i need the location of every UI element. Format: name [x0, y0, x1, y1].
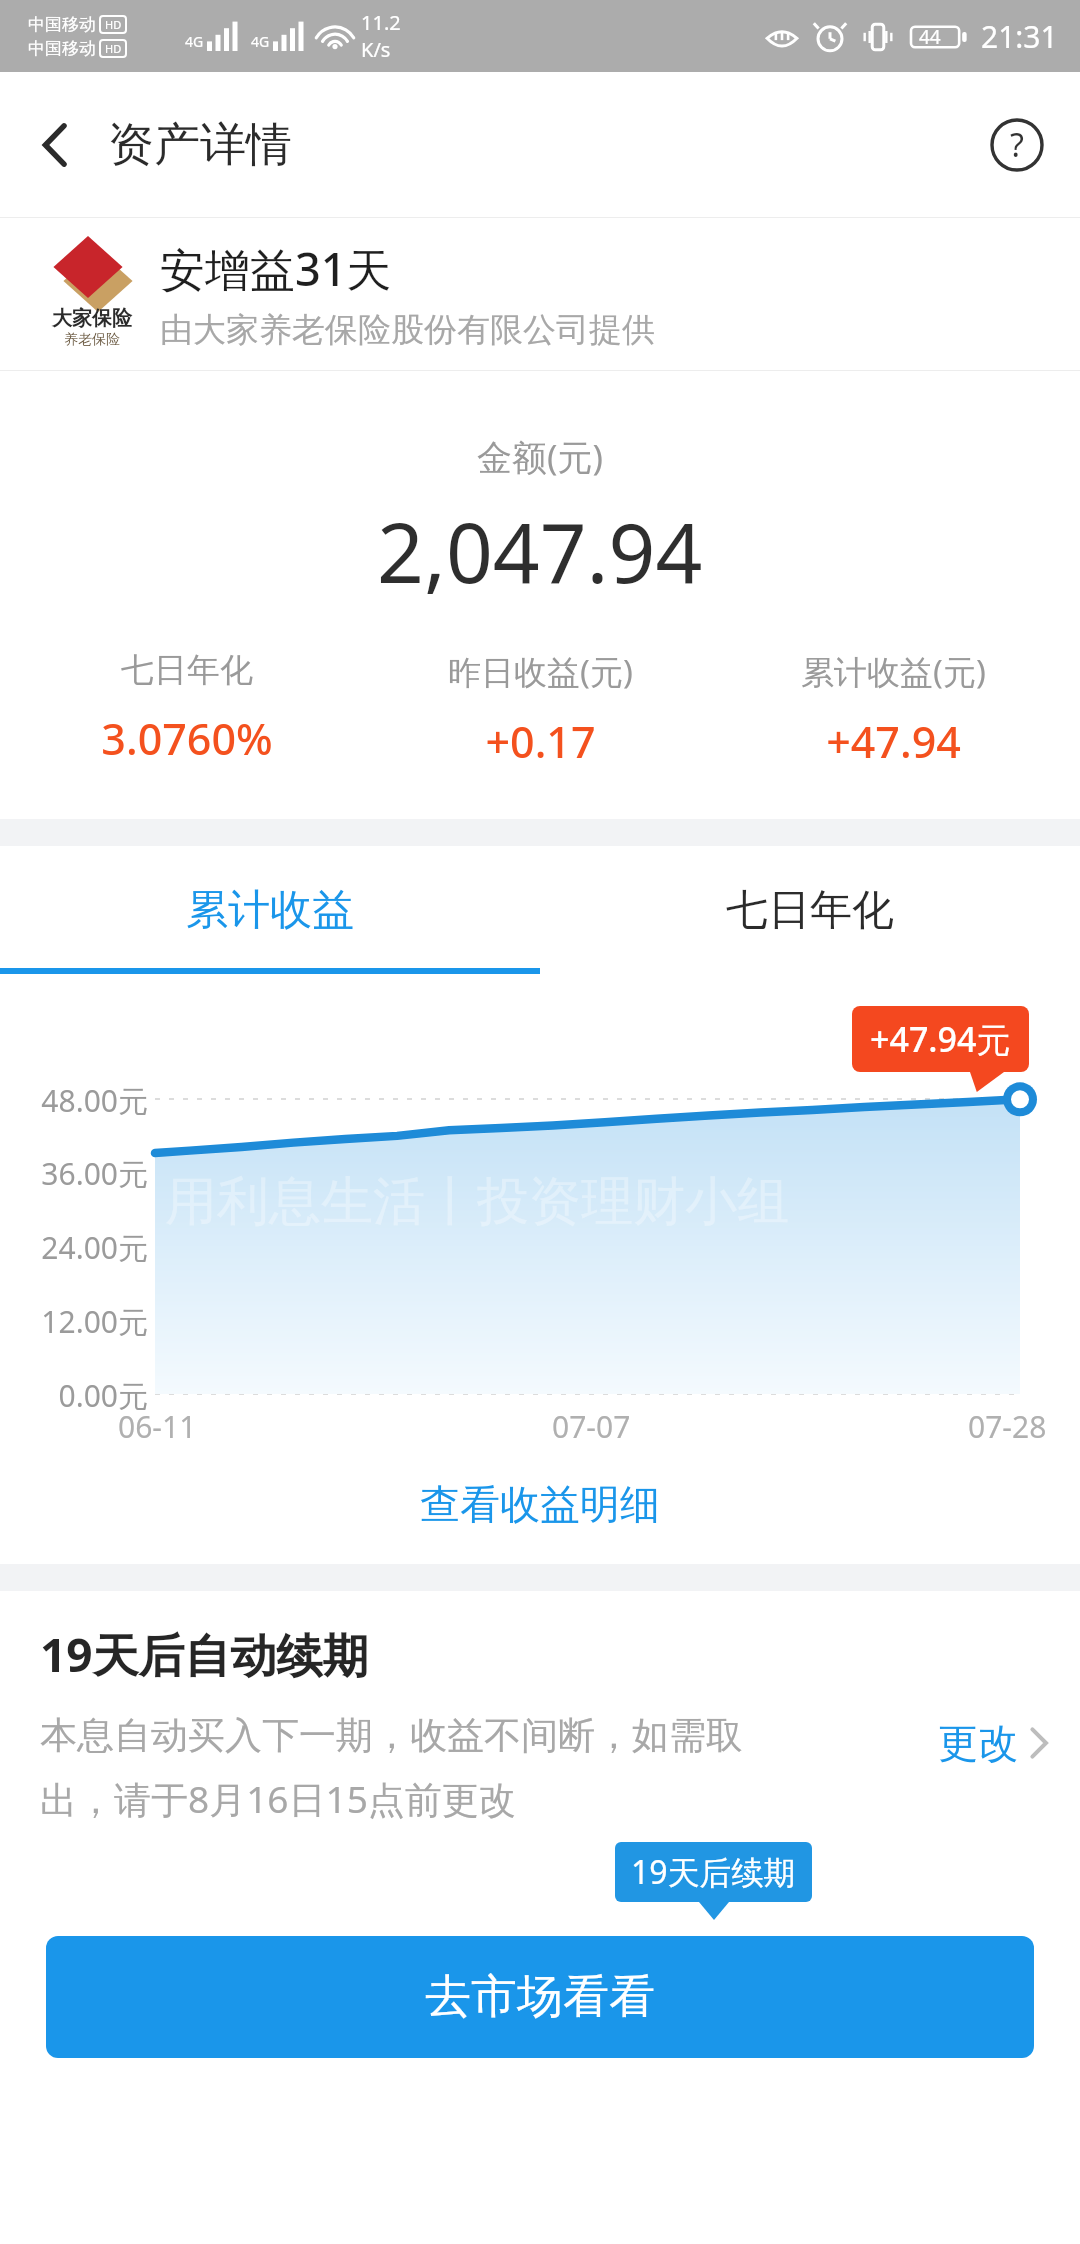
staticText: 24.00元 [18, 1227, 148, 1268]
staticText: 七日年化 [121, 649, 253, 691]
staticText: ? [1010, 123, 1024, 167]
staticText: K/s [361, 36, 391, 63]
other: Eye comfort [765, 24, 799, 50]
staticText: 12.00元 [18, 1301, 148, 1342]
staticText: 养老保险 [64, 331, 120, 349]
staticText: 七日年化 [726, 884, 894, 937]
button[interactable]: Back [0, 92, 312, 198]
staticText: 19天后自动续期 [40, 1623, 369, 1686]
staticText: 由大家养老保险股份有限公司提供 [160, 309, 655, 351]
staticText: +0.17 [485, 712, 596, 771]
staticText: 昨日收益(元) [448, 649, 633, 694]
staticText: 06-11 [118, 1406, 197, 1447]
staticText: 资产详情 [108, 116, 292, 174]
other: Battery 44 percent [911, 22, 967, 52]
other: Alarm [815, 22, 845, 52]
staticText: 本息自动买入下一期，收益不间断，如需取 [40, 1712, 743, 1759]
staticText: HD [105, 41, 122, 56]
staticText: 19天后续期 [631, 1850, 796, 1894]
button[interactable]: 大家保险 [0, 218, 1080, 370]
other: Help [990, 118, 1044, 172]
staticText: 金额(元) [477, 433, 604, 481]
button[interactable]: 七日年化 [540, 846, 1080, 974]
staticText: 07-28 [968, 1406, 1047, 1447]
staticText: 累计收益 [186, 884, 354, 937]
staticText: 07-07 [552, 1406, 631, 1447]
staticText: 21:31 [981, 16, 1058, 57]
staticText: 36.00元 [18, 1153, 148, 1194]
staticText: 查看收益明细 [420, 1479, 660, 1529]
button[interactable]: 七日年化 [10, 649, 364, 768]
staticText: 出，请于8月16日15点前更改 [40, 1773, 516, 1824]
staticText: 用利息生活丨投资理财小组 [165, 1169, 789, 1235]
staticText: 去市场看看 [425, 1968, 655, 2026]
button[interactable]: 查看收益明细 [380, 1461, 700, 1547]
other: Back [40, 121, 70, 169]
button[interactable]: 更改 [928, 1712, 1080, 1778]
staticText: 3.0760% [101, 709, 273, 768]
staticText: 中国移动 [28, 38, 96, 59]
staticText: 48.00元 [18, 1080, 148, 1121]
staticText: +47.94元 [870, 1016, 1011, 1062]
staticText: 累计收益(元) [801, 649, 986, 694]
staticText: 中国移动 [28, 14, 96, 35]
button[interactable]: 去市场看看 [46, 1936, 1034, 2058]
staticText: 0.00元 [18, 1375, 148, 1416]
button[interactable]: 累计收益 [0, 846, 540, 974]
button[interactable]: 昨日收益(元) [364, 649, 717, 771]
staticText: +47.94 [826, 712, 961, 771]
staticText: 安增益31天 [160, 238, 392, 299]
staticText: 大家保险 [52, 306, 132, 331]
staticText: 2,047.94 [377, 495, 703, 607]
staticText: 4G [185, 32, 204, 51]
staticText: HD [105, 17, 122, 32]
button[interactable]: 累计收益(元) [717, 649, 1070, 771]
staticText: 11.2 [361, 9, 401, 36]
staticText: 44 [919, 24, 941, 50]
other: Vibrate [861, 22, 895, 52]
staticText: 4G [251, 32, 270, 51]
staticText: 更改 [938, 1718, 1018, 1768]
button[interactable]: Help [970, 98, 1080, 192]
